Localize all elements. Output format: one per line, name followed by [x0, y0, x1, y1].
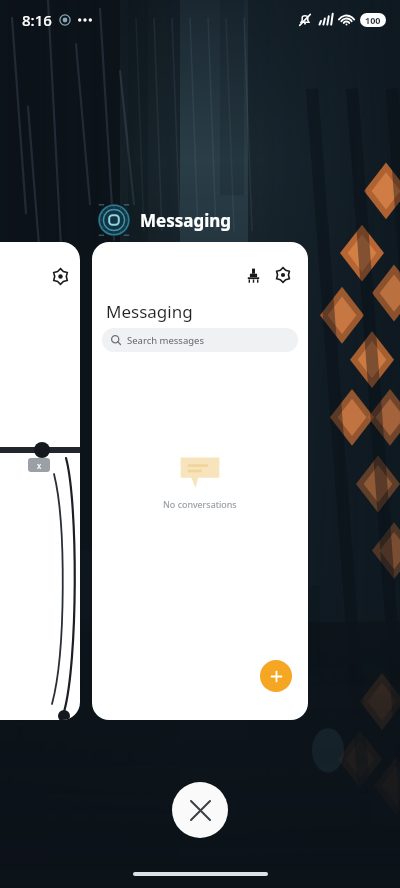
button[interactable]: Search messages [102, 328, 298, 352]
button[interactable]: Settings [270, 262, 296, 288]
button[interactable]: Clean up [92, 242, 308, 720]
button[interactable]: Settings [0, 242, 80, 720]
staticText: 100 [365, 14, 381, 26]
staticText: x [37, 460, 42, 471]
staticText: Search messages [127, 334, 204, 347]
button[interactable]: Settings [48, 264, 72, 288]
staticText: Messaging [140, 209, 232, 232]
staticText: Messaging [106, 300, 193, 323]
staticText: 8:16 [22, 10, 52, 30]
button[interactable]: Clean up [240, 262, 266, 288]
button[interactable]: New conversation [260, 660, 292, 692]
staticText: No conversations [163, 498, 237, 510]
button[interactable]: Clear all [172, 782, 228, 838]
